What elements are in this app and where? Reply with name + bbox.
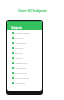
staticText: Physics [15, 36, 24, 39]
other: Economics [12, 72, 14, 74]
other: Physics [12, 37, 14, 39]
button[interactable]: Economics [7, 70, 42, 75]
staticText: Accountancy [15, 76, 30, 79]
staticText: Business [15, 81, 25, 84]
staticText: Computer [15, 66, 27, 69]
other: Mathematics [12, 32, 14, 34]
other: Business [12, 82, 14, 84]
button[interactable]: Mathematics [7, 30, 42, 35]
staticText: Geography [15, 61, 28, 64]
other: History [12, 57, 14, 59]
other: Computer [12, 67, 14, 69]
other: Chemistry [12, 42, 14, 44]
staticText: Biology [15, 46, 24, 49]
staticText: History [15, 56, 24, 59]
button[interactable]: Computer [7, 65, 42, 70]
other: Geography [12, 62, 14, 64]
button[interactable]: Accountancy [7, 75, 42, 80]
staticText: Subjects [11, 26, 23, 30]
staticText: Chemistry [15, 41, 27, 44]
button[interactable]: Biology [7, 45, 42, 50]
staticText: Mathematics [15, 31, 30, 34]
button[interactable]: Business [7, 80, 42, 85]
other: Biology [12, 47, 14, 49]
button[interactable]: Geography [7, 60, 42, 65]
button[interactable]: Physics [7, 35, 42, 40]
staticText: Economics [15, 71, 27, 74]
button[interactable]: English [7, 50, 42, 55]
button[interactable]: History [7, 55, 42, 60]
button[interactable]: Chemistry [7, 40, 42, 45]
staticText: English [15, 51, 24, 54]
other: Accountancy [12, 77, 14, 79]
staticText: Over 50 Subjects [18, 8, 47, 13]
other: English [12, 52, 14, 54]
